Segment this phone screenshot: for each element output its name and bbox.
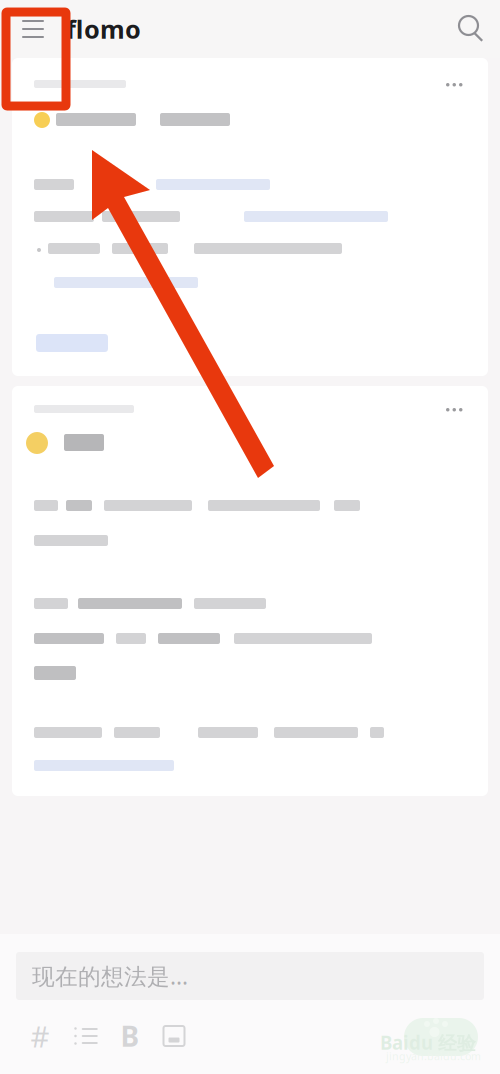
button[interactable]: Bold xyxy=(108,1010,152,1062)
staticText: B xyxy=(120,1017,139,1055)
button[interactable]: Bulleted list xyxy=(64,1010,108,1062)
staticText: 现在的想法是... xyxy=(32,961,188,991)
staticText: # xyxy=(30,1016,49,1055)
button[interactable]: Menu xyxy=(0,0,66,58)
staticText: Baidu 经验 xyxy=(380,1030,476,1055)
button[interactable]: Tag xyxy=(16,1010,64,1062)
staticText: flomo xyxy=(66,12,141,46)
button[interactable]: Search xyxy=(444,0,500,58)
button[interactable]: 现在的想法是... xyxy=(16,952,484,1000)
button[interactable]: Insert image xyxy=(152,1010,196,1062)
staticText: jingyan.baidu.com xyxy=(386,1049,481,1063)
